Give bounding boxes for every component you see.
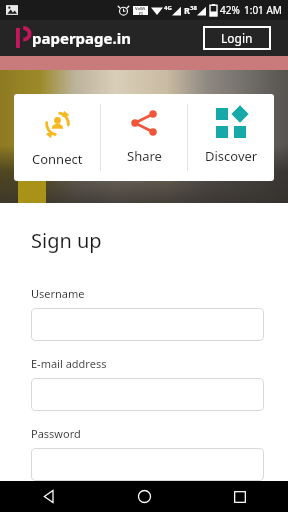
staticText: E-mail address [31, 356, 107, 371]
button[interactable]: Connect [14, 94, 100, 181]
staticText: Share [127, 147, 162, 165]
staticText: FI [139, 11, 143, 15]
staticText: 38 [190, 4, 197, 12]
button[interactable]: Home [96, 481, 192, 512]
other: Discover [216, 108, 246, 138]
staticText: 1:01 AM [244, 3, 282, 17]
staticText: Discover [205, 147, 258, 165]
staticText: 4G [164, 4, 172, 12]
staticText: paperpage.in [32, 28, 131, 48]
button[interactable]: Back [0, 481, 96, 512]
staticText: R [184, 4, 190, 16]
button[interactable]: Recent apps [192, 481, 288, 512]
staticText: Connect [32, 150, 83, 168]
other: Connect [41, 108, 74, 141]
staticText: Login [221, 30, 253, 46]
other: Share [129, 108, 159, 138]
button[interactable]: paperpage.in [16, 28, 131, 48]
button[interactable] [31, 378, 264, 411]
staticText: Sign up [31, 227, 102, 254]
staticText: VoWi [135, 6, 146, 11]
button[interactable]: Share [101, 94, 187, 181]
staticText: 42% [220, 3, 240, 17]
button[interactable] [31, 448, 264, 481]
button[interactable]: Login [203, 26, 271, 50]
staticText: Password [31, 426, 81, 441]
button[interactable] [31, 308, 264, 341]
button[interactable]: Discover [188, 94, 274, 181]
staticText: Username [31, 286, 85, 301]
